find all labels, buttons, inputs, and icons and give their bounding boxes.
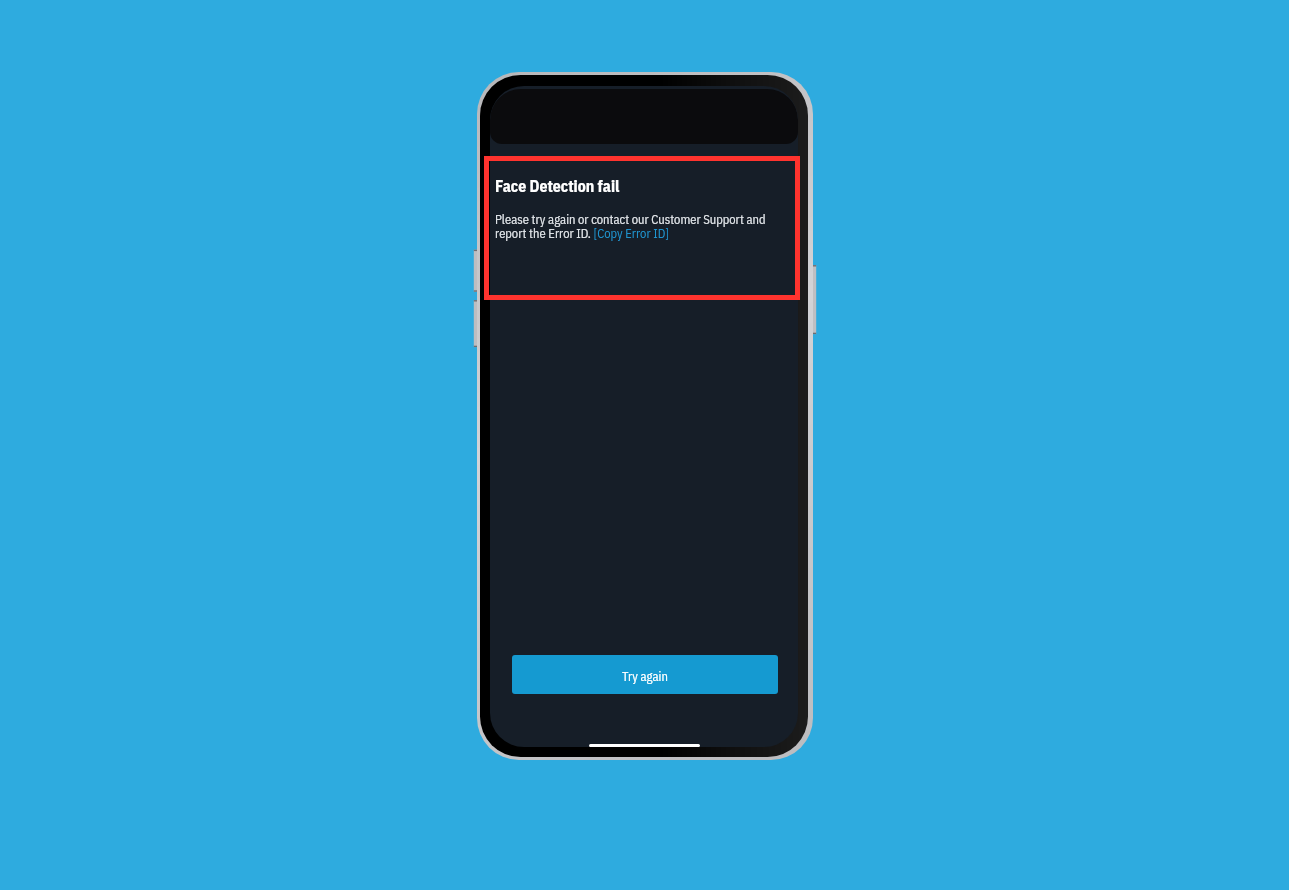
staticText: Try again xyxy=(622,668,668,684)
other: Home indicator xyxy=(589,744,700,747)
staticText: Face Detection fail xyxy=(495,176,620,196)
button[interactable]: Copy Error ID xyxy=(592,225,667,240)
staticText: Please try again or contact our Customer… xyxy=(495,211,776,242)
button[interactable]: Try again xyxy=(512,655,778,694)
